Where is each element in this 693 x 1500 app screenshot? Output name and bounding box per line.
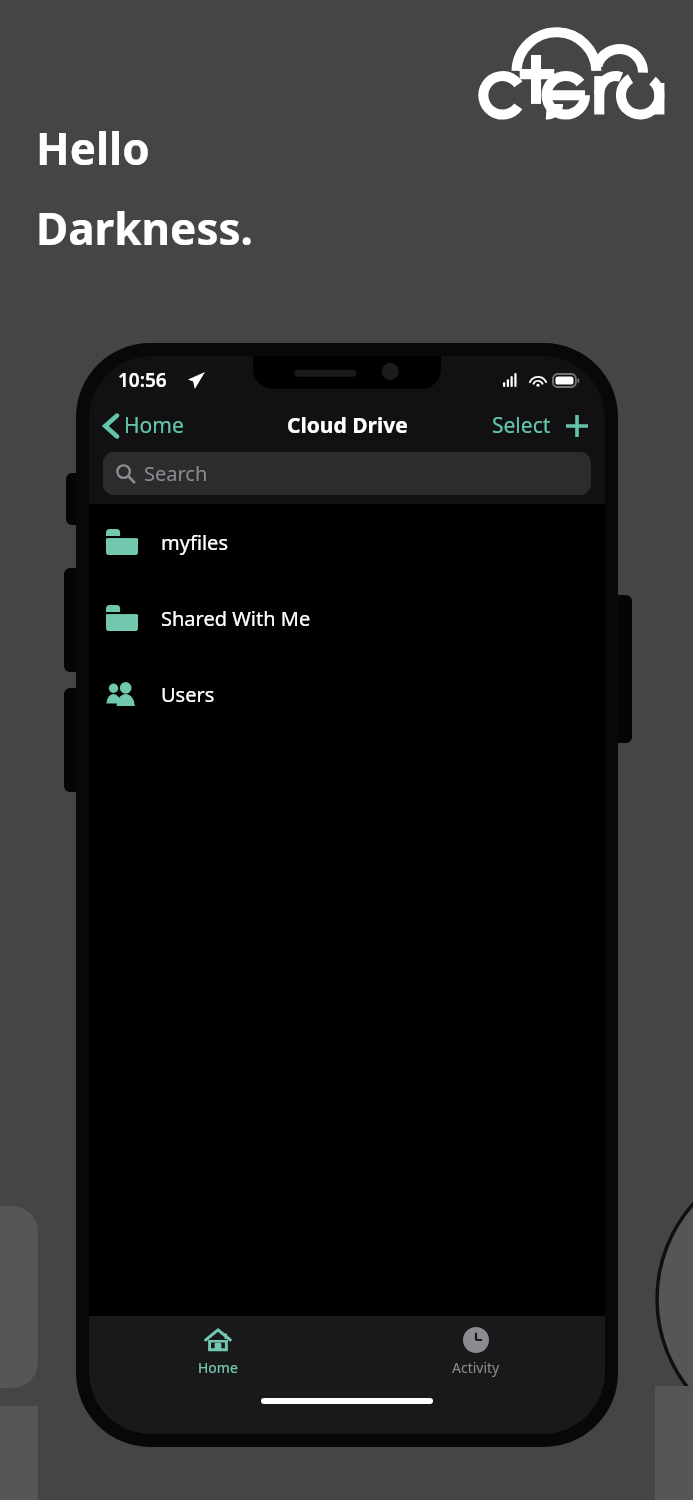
- staticText: Search: [144, 460, 208, 487]
- staticText: Shared With Me: [161, 605, 311, 632]
- staticText: Hello: [36, 118, 150, 178]
- button[interactable]: Users: [89, 656, 605, 732]
- button[interactable]: Shared With Me: [89, 580, 605, 656]
- staticText: myfiles: [161, 529, 228, 556]
- staticText: Home: [198, 1358, 238, 1377]
- button[interactable]: Search: [103, 452, 591, 495]
- staticText: Darkness.: [36, 198, 253, 258]
- staticText: Cloud Drive: [287, 411, 408, 440]
- staticText: Users: [161, 681, 215, 708]
- button[interactable]: Add: [559, 406, 605, 446]
- staticText: Activity: [452, 1358, 500, 1377]
- button[interactable]: Activity: [347, 1316, 605, 1386]
- button[interactable]: Select: [484, 403, 559, 448]
- staticText: Home: [124, 411, 184, 440]
- staticText: 10:56: [118, 367, 167, 393]
- button[interactable]: myfiles: [89, 504, 605, 580]
- button[interactable]: Home: [89, 405, 194, 446]
- button[interactable]: Home: [89, 1316, 347, 1386]
